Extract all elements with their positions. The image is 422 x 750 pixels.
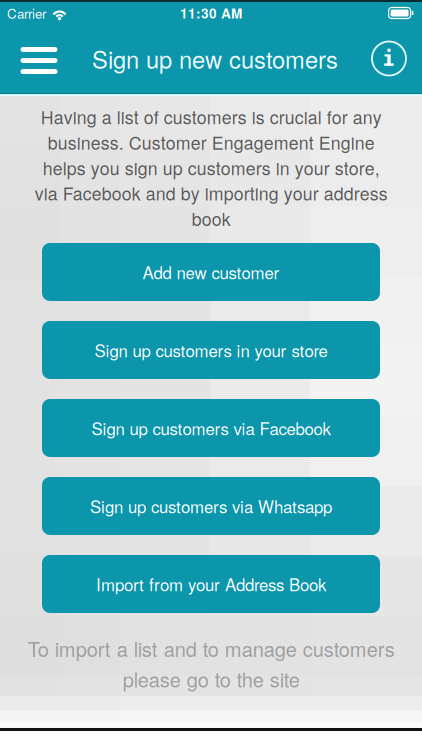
button[interactable]: Menu [10,25,68,92]
staticText: Having a list of customers is crucial fo… [34,104,387,231]
staticText: Carrier [7,3,46,23]
button[interactable]: Info [362,25,416,92]
staticText: To import a list and to manage customers… [27,634,394,693]
button[interactable]: Sign up customers in your store [42,321,380,379]
button[interactable]: Import from your Address Book [42,555,380,613]
staticText: Add new customer [142,260,279,284]
staticText: Sign up customers in your store [94,338,327,362]
staticText: Sign up customers via Facebook [91,416,330,440]
staticText: Sign up new customers [92,41,338,75]
staticText: 11:30 AM [180,3,242,23]
staticText: Import from your Address Book [96,572,326,596]
staticText: Sign up customers via Whatsapp [90,494,332,518]
button[interactable]: Sign up customers via Facebook [42,399,380,457]
button[interactable]: Sign up customers via Whatsapp [42,477,380,535]
button[interactable]: Add new customer [42,243,380,301]
